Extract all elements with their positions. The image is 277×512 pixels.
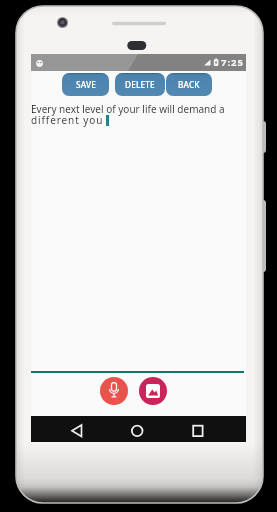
button[interactable]: SAVE — [62, 73, 109, 96]
staticText: 7:25 — [221, 56, 244, 69]
button[interactable]: BACK — [166, 73, 212, 96]
button[interactable] — [139, 377, 167, 405]
button[interactable] — [125, 419, 150, 439]
staticText: SAVE — [76, 79, 96, 90]
staticText: different you — [31, 113, 104, 127]
button[interactable] — [64, 419, 90, 439]
button[interactable]: DELETE — [115, 73, 165, 96]
staticText: DELETE — [125, 79, 155, 90]
staticText: Every next level of your life will deman… — [31, 102, 225, 116]
button[interactable] — [185, 419, 211, 439]
button[interactable] — [100, 377, 128, 405]
staticText: BACK — [178, 79, 200, 90]
